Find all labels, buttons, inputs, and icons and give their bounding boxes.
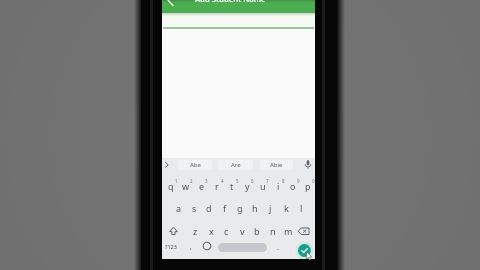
staticText: Abe bbox=[190, 161, 201, 169]
staticText: c bbox=[224, 225, 229, 237]
button[interactable] bbox=[202, 241, 212, 251]
staticText: f bbox=[223, 202, 227, 214]
staticText: u bbox=[260, 180, 266, 192]
staticText: d bbox=[206, 202, 212, 214]
button[interactable]: r bbox=[208, 179, 226, 193]
staticText: y bbox=[245, 180, 250, 192]
button[interactable] bbox=[162, 159, 172, 170]
staticText: 4 bbox=[221, 178, 224, 184]
staticText: Add Student Name bbox=[195, 0, 266, 5]
button[interactable]: Abe bbox=[178, 160, 212, 170]
button[interactable]: Abie bbox=[260, 160, 293, 170]
button[interactable]: z bbox=[186, 224, 204, 238]
staticText: 6 bbox=[251, 178, 254, 184]
staticText: Are bbox=[231, 161, 241, 169]
button[interactable]: n bbox=[264, 224, 282, 238]
staticText: e bbox=[199, 180, 205, 192]
staticText: b bbox=[254, 225, 260, 237]
button[interactable]: ?123 bbox=[162, 239, 180, 253]
staticText: r bbox=[215, 180, 219, 192]
staticText: w bbox=[182, 180, 190, 192]
staticText: v bbox=[240, 225, 245, 237]
button[interactable]: v bbox=[233, 224, 251, 238]
staticText: j bbox=[269, 202, 272, 214]
button[interactable]: k bbox=[277, 201, 295, 215]
button[interactable]: c bbox=[217, 224, 235, 238]
button[interactable]: e bbox=[193, 179, 211, 193]
staticText: i bbox=[277, 180, 280, 192]
button[interactable] bbox=[218, 243, 267, 252]
staticText: h bbox=[252, 202, 258, 214]
button[interactable]: h bbox=[246, 201, 264, 215]
button[interactable]: s bbox=[185, 201, 203, 215]
staticText: n bbox=[270, 225, 276, 237]
button[interactable]: f bbox=[216, 201, 234, 215]
staticText: t bbox=[230, 180, 234, 192]
button[interactable]: u bbox=[254, 179, 272, 193]
staticText: 5 bbox=[236, 178, 239, 184]
button[interactable]: i bbox=[269, 179, 287, 193]
button[interactable] bbox=[164, 0, 176, 11]
button[interactable]: j bbox=[261, 201, 279, 215]
button[interactable]: p bbox=[299, 179, 315, 193]
staticText: q bbox=[168, 180, 174, 192]
staticText: o bbox=[290, 180, 296, 192]
staticText: s bbox=[192, 202, 197, 214]
button[interactable]: x bbox=[202, 224, 220, 238]
staticText: p bbox=[305, 180, 311, 192]
staticText: x bbox=[209, 225, 214, 237]
staticText: a bbox=[176, 202, 182, 214]
button[interactable]: q bbox=[162, 179, 180, 193]
staticText: . bbox=[277, 243, 279, 253]
button[interactable]: t bbox=[223, 179, 241, 193]
button[interactable]: l bbox=[292, 201, 310, 215]
staticText: , bbox=[190, 242, 192, 252]
button[interactable] bbox=[302, 159, 314, 170]
button[interactable]: , bbox=[182, 240, 200, 254]
staticText: ?123 bbox=[165, 243, 177, 250]
button[interactable]: . bbox=[269, 241, 287, 255]
staticText: 8 bbox=[282, 178, 285, 184]
button[interactable] bbox=[166, 224, 181, 239]
staticText: m bbox=[284, 225, 293, 237]
button[interactable]: w bbox=[177, 179, 195, 193]
button[interactable]: a bbox=[170, 201, 188, 215]
staticText: l bbox=[300, 202, 303, 214]
button[interactable]: o bbox=[284, 179, 302, 193]
button[interactable]: Are bbox=[218, 160, 253, 170]
button[interactable]: d bbox=[200, 201, 218, 215]
button[interactable] bbox=[162, 14, 315, 27]
staticText: 2 bbox=[190, 178, 193, 184]
staticText: 7 bbox=[266, 178, 269, 184]
staticText: 3 bbox=[205, 178, 208, 184]
button[interactable]: b bbox=[248, 224, 266, 238]
button[interactable]: g bbox=[231, 201, 249, 215]
button[interactable]: m bbox=[279, 224, 297, 238]
staticText: z bbox=[193, 225, 198, 237]
button[interactable] bbox=[295, 241, 314, 259]
staticText: 1 bbox=[175, 178, 178, 184]
button[interactable] bbox=[296, 224, 313, 239]
staticText: 0 bbox=[312, 178, 315, 184]
staticText: k bbox=[284, 202, 289, 214]
staticText: Abie bbox=[270, 161, 283, 169]
staticText: 9 bbox=[297, 178, 300, 184]
button[interactable]: y bbox=[238, 179, 256, 193]
staticText: g bbox=[237, 202, 243, 214]
